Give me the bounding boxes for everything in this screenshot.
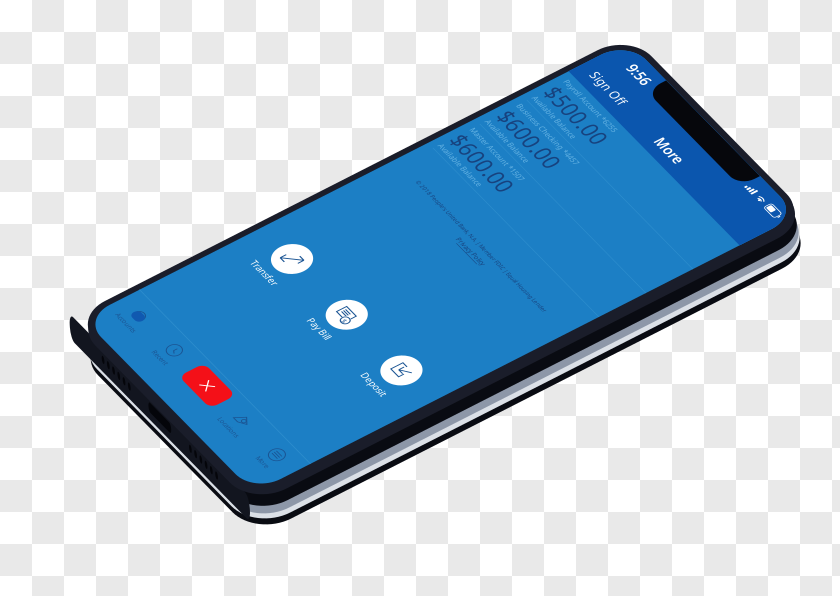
button[interactable]: $ <box>127 520 247 596</box>
staticText: Sign Off <box>20 53 87 76</box>
button[interactable]: Transfer <box>7 520 127 596</box>
button[interactable]: Business Checking *4457 <box>0 158 375 228</box>
staticText: $500.00 <box>11 103 127 144</box>
staticText: Transfer <box>41 578 93 596</box>
button[interactable]: Sign Off <box>8 44 99 85</box>
staticText: $600.00 <box>11 173 127 214</box>
staticText: Business Checking *4457 <box>11 163 140 177</box>
staticText: Master Account *1507 <box>11 233 123 247</box>
staticText: Available Balance <box>11 140 100 154</box>
staticText: More <box>162 52 213 78</box>
staticText: 9:56 <box>36 8 75 34</box>
staticText: $600.00 <box>11 243 127 284</box>
staticText: Payroll Account *6255 <box>11 93 121 107</box>
button[interactable]: Privacy Policy <box>158 355 216 368</box>
staticText: © 2018 People's United Bank, N.A. | Memb… <box>47 340 328 351</box>
button[interactable]: Payroll Account *6255 <box>0 88 375 158</box>
button[interactable]: Deposit <box>247 520 367 596</box>
staticText: Pay Bill <box>166 578 209 596</box>
staticText: Available Balance <box>11 280 100 294</box>
staticText: Privacy Policy <box>158 355 216 367</box>
staticText: Available Balance <box>11 210 100 224</box>
button[interactable]: Master Account *1507 <box>0 228 375 298</box>
staticText: Deposit <box>283 578 331 596</box>
